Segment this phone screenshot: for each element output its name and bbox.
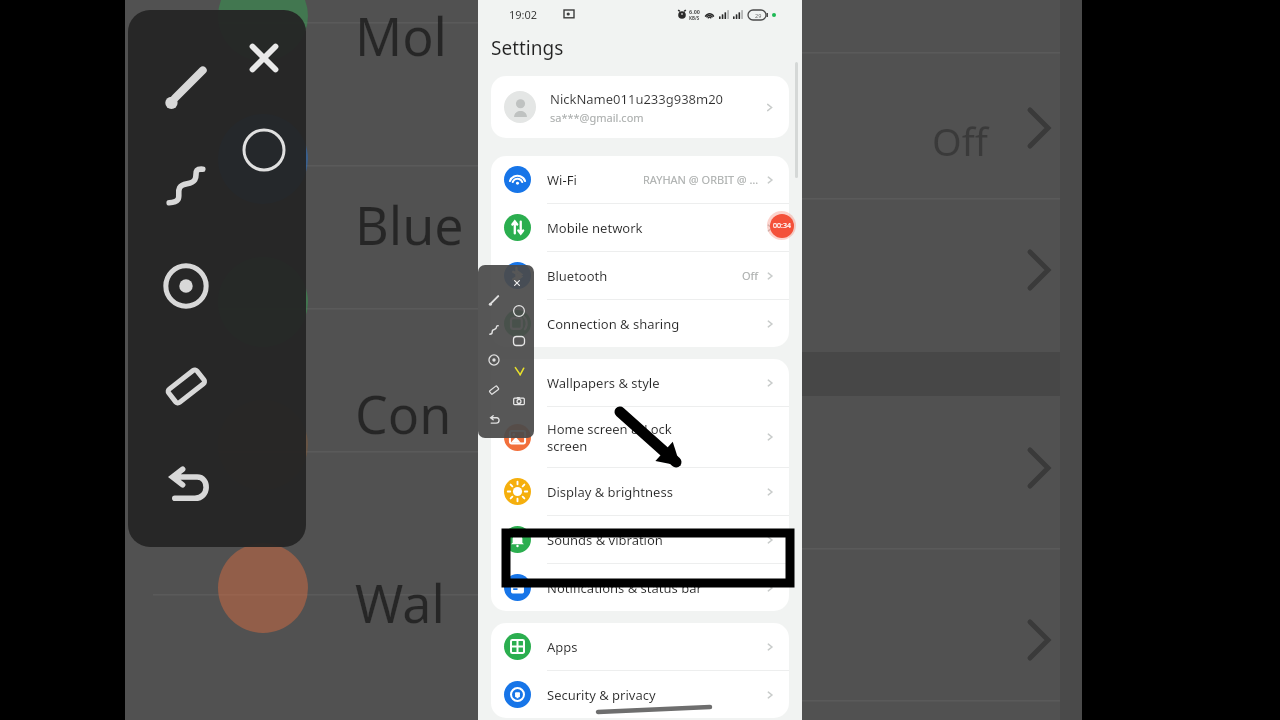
staticText: Con [355, 378, 452, 449]
staticText: Wal [355, 567, 445, 638]
staticText: Home screen & Lock screen [547, 420, 672, 455]
staticText: Blue [355, 189, 464, 260]
button[interactable]: Mobile network [491, 204, 789, 252]
staticText: sa***@gmail.com [550, 110, 644, 125]
staticText: Apps [547, 638, 578, 656]
staticText: Security & privacy [547, 686, 656, 704]
staticText: RAYHAN @ ORBIT @ … [643, 172, 759, 187]
button[interactable]: Wallpapers & style [491, 359, 789, 407]
button[interactable]: Security & privacy [491, 671, 789, 718]
button[interactable]: Sounds & vibration [491, 516, 789, 564]
staticText: Mobile network [547, 219, 643, 237]
button[interactable]: Display & brightness [491, 468, 789, 516]
other: Drawing toolbar [478, 265, 534, 438]
staticText: 29 [755, 12, 762, 19]
staticText: 6.00 [689, 8, 700, 15]
button[interactable]: Bluetooth [491, 252, 789, 300]
staticText: 19:02 [509, 7, 538, 22]
staticText: Off [742, 268, 759, 283]
staticText: Connection & sharing [547, 315, 680, 333]
staticText: Display & brightness [547, 483, 673, 501]
staticText: Settings [491, 35, 564, 61]
staticText: Bluetooth [547, 267, 608, 285]
staticText: Wi-Fi [547, 171, 577, 189]
button[interactable]: Notifications & status bar [491, 564, 789, 611]
button[interactable]: Connection & sharing [491, 300, 789, 347]
button[interactable]: Wi-Fi [491, 156, 789, 204]
staticText: NickName011u233g938m20 [550, 90, 724, 108]
staticText: Wallpapers & style [547, 374, 660, 392]
staticText: Sounds & vibration [547, 531, 663, 549]
staticText: KB/S [689, 15, 700, 21]
button[interactable]: NickName011u233g938m20 [491, 76, 789, 138]
staticText: Mol [355, 0, 448, 71]
staticText: Notifications & status bar [547, 579, 702, 597]
staticText: Off [932, 115, 988, 167]
staticText: 00:34 [773, 221, 791, 231]
button[interactable]: Apps [491, 623, 789, 671]
button[interactable]: Home screen & Lock screen [491, 407, 789, 468]
